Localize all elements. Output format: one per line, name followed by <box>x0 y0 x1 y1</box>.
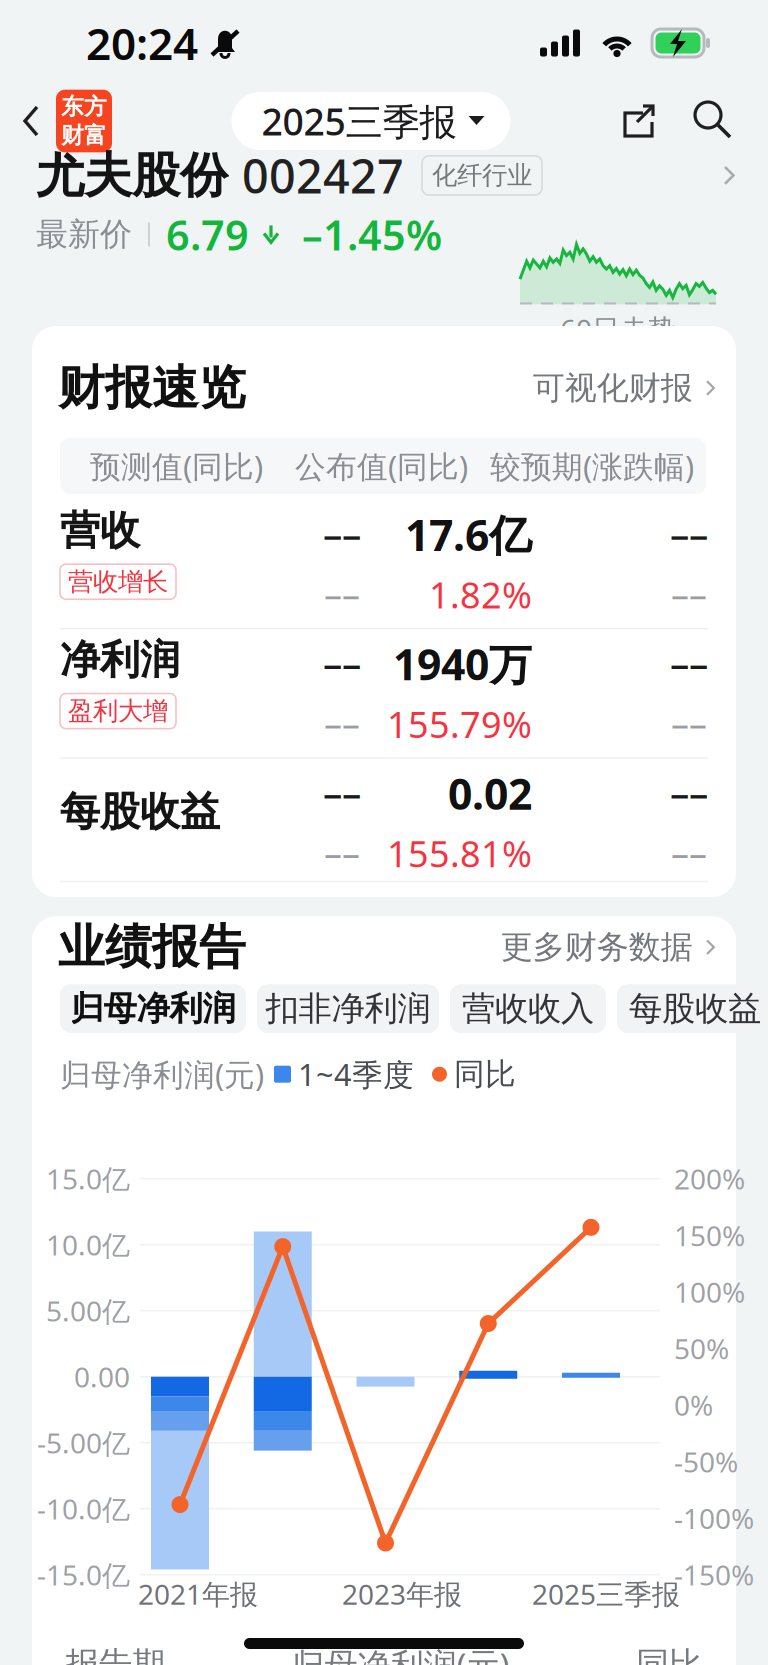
staticText: 同比 <box>454 1055 516 1093</box>
staticText: 较预期(涨跌幅) <box>490 446 694 486</box>
staticText: 5.00亿 <box>46 1292 130 1329</box>
button[interactable]: 分享 <box>620 99 658 143</box>
staticText: –– <box>671 699 707 746</box>
button[interactable]: 2025三季报 <box>231 92 510 150</box>
staticText: 可视化财报 <box>533 368 693 408</box>
staticText: 6.79 <box>166 207 249 262</box>
staticText: 200% <box>674 1160 745 1197</box>
button[interactable]: 营收收入 <box>450 984 606 1033</box>
staticText: –– <box>670 637 708 689</box>
staticText: –– <box>324 699 360 746</box>
staticText: -150% <box>674 1556 754 1593</box>
button[interactable]: 搜索 <box>692 99 734 143</box>
staticText: 业绩报告 <box>58 918 246 976</box>
staticText: –– <box>323 767 361 818</box>
staticText: –– <box>670 508 708 559</box>
staticText: 归母净利润(元) <box>291 1642 509 1665</box>
staticText: 150% <box>674 1217 745 1254</box>
staticText: -50% <box>674 1443 738 1480</box>
staticText: –1.45% <box>302 207 442 262</box>
staticText: 0.00 <box>74 1358 130 1395</box>
staticText: 东方 <box>61 93 107 120</box>
button[interactable]: 60日走势 <box>0 156 768 326</box>
staticText: 净利润 <box>60 635 180 684</box>
staticText: 每股收益 <box>60 787 220 836</box>
staticText: 2025三季报 <box>532 1575 680 1612</box>
button[interactable]: 扣非净利润 <box>257 984 439 1033</box>
staticText: 更多财务数据 <box>501 927 693 967</box>
staticText: 0.02 <box>448 765 532 821</box>
staticText: 0% <box>674 1386 713 1424</box>
staticText: 营收收入 <box>462 988 594 1029</box>
staticText: 50% <box>674 1330 729 1367</box>
staticText: 20:24 <box>86 14 198 72</box>
staticText: 最新价 <box>36 215 132 254</box>
staticText: 1940万 <box>393 635 532 692</box>
staticText: –– <box>323 508 361 559</box>
staticText: 2021年报 <box>138 1575 258 1612</box>
staticText: 15.0亿 <box>46 1160 130 1197</box>
staticText: –– <box>671 828 707 876</box>
staticText: -5.00亿 <box>37 1424 130 1461</box>
button[interactable]: 更多财务数据 <box>501 924 716 970</box>
staticText: 17.6亿 <box>405 506 532 563</box>
button[interactable]: 归母净利润 <box>60 984 246 1033</box>
staticText: -10.0亿 <box>37 1490 130 1527</box>
staticText: 155.79% <box>387 700 532 748</box>
staticText: 公布值(同比) <box>295 446 468 486</box>
staticText: –– <box>671 569 707 617</box>
staticText: 60日走势 <box>560 310 676 348</box>
staticText: 财报速览 <box>58 359 246 417</box>
staticText: 财富 <box>61 121 107 149</box>
staticText: 2023年报 <box>342 1575 462 1612</box>
staticText: 扣非净利润 <box>265 988 430 1029</box>
staticText: -100% <box>674 1499 754 1537</box>
staticText: 2025三季报 <box>261 96 456 146</box>
staticText: 1~4季度 <box>298 1054 414 1094</box>
staticText: 归母净利润 <box>70 988 235 1029</box>
staticText: 营收增长 <box>68 566 168 597</box>
staticText: 10.0亿 <box>46 1226 130 1263</box>
staticText: 155.81% <box>387 829 532 877</box>
staticText: 报告期 <box>66 1644 165 1665</box>
staticText: 化纤行业 <box>432 160 532 191</box>
staticText: 盈利大增 <box>68 695 168 727</box>
staticText: 100% <box>674 1273 745 1310</box>
staticText: 预测值(同比) <box>90 446 263 486</box>
staticText: -15.0亿 <box>37 1556 130 1593</box>
staticText: 1.82% <box>429 571 532 618</box>
staticText: 002427 <box>242 144 404 206</box>
staticText: –– <box>324 828 360 876</box>
staticText: –– <box>323 637 361 689</box>
button[interactable]: 可视化财报 <box>533 365 716 411</box>
staticText: 同比 <box>636 1644 702 1665</box>
staticText: 尤夫股份 <box>36 146 228 205</box>
staticText: 归母净利润(元) <box>60 1054 264 1094</box>
button[interactable]: 每股收益 <box>617 984 768 1033</box>
staticText: –– <box>670 767 708 818</box>
staticText: 营收 <box>60 506 140 555</box>
staticText: –– <box>324 569 360 617</box>
button[interactable]: 返回 <box>0 85 122 157</box>
staticText: 每股收益 <box>629 988 761 1029</box>
